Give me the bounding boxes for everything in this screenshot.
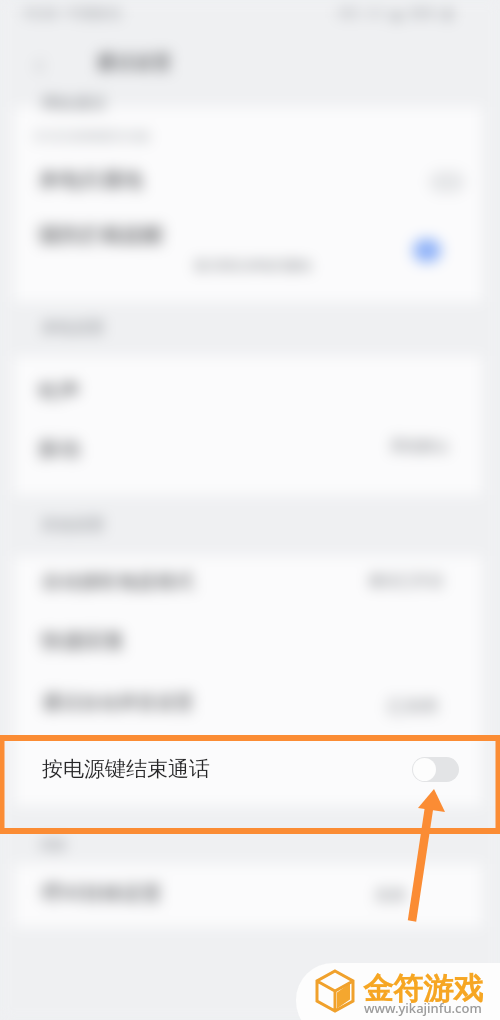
staticText: 其他设置 — [41, 515, 105, 535]
staticText: 铃声 — [38, 378, 80, 404]
staticText: 振动 — [38, 436, 80, 462]
button[interactable]: 按电源键结束通话 — [0, 724, 500, 806]
staticText: www.yikajinfu.com — [364, 999, 482, 1017]
staticText: 关闭 — [374, 886, 406, 906]
staticText: 来电归属地 — [38, 167, 143, 193]
staticText: 来电设置 — [41, 318, 105, 338]
staticText: 已关闭 — [387, 696, 438, 717]
staticText: 快捷回复 — [41, 628, 125, 654]
staticText: 系统默认 — [390, 437, 450, 456]
staticText: 网络通话 — [42, 94, 106, 114]
staticText: 通话自动录音设置 — [42, 691, 194, 715]
staticText: HD ıl ıl ▲ 86% ▮ — [338, 3, 452, 22]
staticText: 自动接听免提模式 — [42, 570, 194, 594]
staticText: 呼叫转移设置 — [42, 881, 162, 906]
staticText: 金符游戏 — [363, 970, 483, 1008]
staticText: 通话已开启 — [368, 572, 443, 591]
staticText: 骚扰拦截提醒 — [38, 222, 164, 248]
staticText: 高级 — [40, 836, 66, 852]
staticText: 按电源键结束通话 — [42, 756, 210, 782]
staticText: 10:26 中国移动 — [22, 3, 122, 22]
button[interactable]: End call with power button toggle — [412, 757, 459, 782]
staticText: 通话设置 — [96, 51, 172, 75]
staticText: 显示陌生来电归属地 — [194, 257, 311, 273]
